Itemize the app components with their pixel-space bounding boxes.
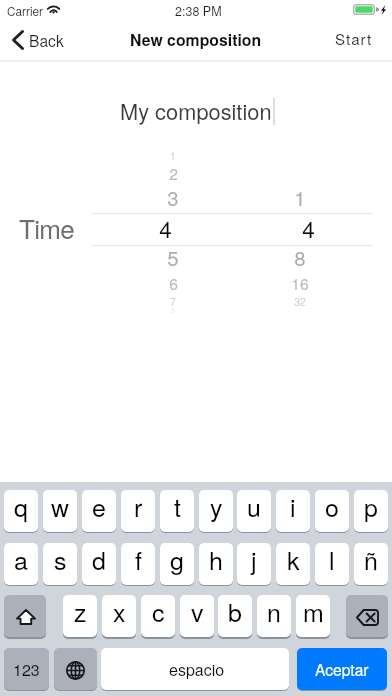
button[interactable]: d <box>82 543 116 585</box>
staticText: z <box>74 595 87 629</box>
staticText: g <box>170 543 184 577</box>
button[interactable]: Next keyboard <box>54 648 97 690</box>
staticText: 2 <box>169 162 178 184</box>
button[interactable]: Start <box>333 26 375 52</box>
button[interactable]: i <box>276 490 310 532</box>
staticText: 4 <box>159 212 172 244</box>
button[interactable]: v <box>180 595 214 637</box>
button[interactable]: h <box>199 543 233 585</box>
button[interactable]: g <box>160 543 194 585</box>
staticText: w <box>51 490 70 524</box>
button[interactable]: l <box>315 543 349 585</box>
button[interactable]: k <box>276 543 310 585</box>
button[interactable]: c <box>141 595 175 637</box>
button[interactable]: w <box>43 490 77 532</box>
staticText: v <box>191 595 204 629</box>
staticText: 4 <box>302 212 315 244</box>
button[interactable]: p <box>354 490 388 532</box>
staticText: ñ <box>364 543 378 577</box>
button[interactable]: x <box>102 595 136 637</box>
button[interactable]: 1 <box>230 145 370 323</box>
staticText: 32 <box>294 294 306 309</box>
staticText: p <box>364 490 378 524</box>
button[interactable]: 123 <box>4 648 49 690</box>
button[interactable]: b <box>218 595 252 637</box>
staticText: Aceptar <box>315 658 369 680</box>
staticText: 5 <box>167 243 179 272</box>
button[interactable]: s <box>43 543 77 585</box>
button[interactable]: 1 <box>103 145 243 323</box>
staticText: i <box>290 490 296 524</box>
staticText: c <box>152 595 165 629</box>
button[interactable]: f <box>121 543 155 585</box>
staticText: 16 <box>291 272 309 294</box>
staticText: d <box>92 543 106 577</box>
staticText: x <box>113 595 126 629</box>
button[interactable]: q <box>4 490 38 532</box>
staticText: h <box>209 543 223 577</box>
staticText: b <box>228 595 242 629</box>
staticText: 2:38 PM <box>175 2 222 20</box>
staticText: espacio <box>169 658 225 681</box>
staticText: 3 <box>167 183 179 212</box>
staticText: u <box>247 490 261 524</box>
button[interactable]: My composition <box>120 95 272 126</box>
button[interactable]: Delete <box>346 595 388 637</box>
button[interactable]: z <box>63 595 97 637</box>
button[interactable]: r <box>121 490 155 532</box>
staticText: 123 <box>13 658 40 681</box>
staticText: k <box>287 543 300 577</box>
staticText: 7 <box>170 294 176 309</box>
button[interactable]: n <box>257 595 291 637</box>
staticText: 8 <box>294 243 306 272</box>
button[interactable]: New composition <box>130 28 262 51</box>
button[interactable]: y <box>199 490 233 532</box>
button[interactable]: m <box>296 595 330 637</box>
staticText: a <box>14 543 28 577</box>
staticText: Carrier <box>7 2 44 19</box>
button[interactable]: Time <box>19 209 74 246</box>
staticText: y <box>210 490 223 524</box>
button[interactable]: Aceptar <box>297 648 387 690</box>
staticText: r <box>134 490 143 524</box>
staticText: 8 <box>171 306 175 315</box>
button[interactable]: j <box>237 543 271 585</box>
button[interactable]: u <box>237 490 271 532</box>
staticText: n <box>267 595 281 629</box>
button[interactable]: a <box>4 543 38 585</box>
staticText: l <box>329 543 335 577</box>
staticText: t <box>174 490 181 524</box>
staticText: 1 <box>170 148 176 163</box>
button[interactable]: ñ <box>354 543 388 585</box>
staticText: m <box>303 595 324 629</box>
button[interactable]: o <box>315 490 349 532</box>
button[interactable]: e <box>82 490 116 532</box>
button[interactable]: espacio <box>101 648 289 690</box>
button[interactable]: t <box>160 490 194 532</box>
staticText: q <box>14 490 28 524</box>
staticText: e <box>92 490 106 524</box>
staticText: s <box>54 543 67 577</box>
button[interactable]: Back <box>6 28 74 52</box>
button[interactable]: Shift <box>4 595 46 637</box>
staticText: f <box>135 543 142 577</box>
staticText: 1 <box>294 183 306 212</box>
staticText: Back <box>29 29 64 51</box>
staticText: 6 <box>169 272 178 294</box>
staticText: j <box>251 543 257 577</box>
staticText: o <box>325 490 339 524</box>
